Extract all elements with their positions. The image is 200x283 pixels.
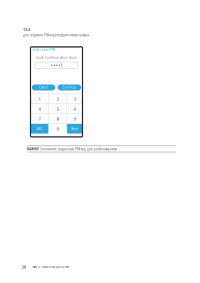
staticText: Enter your PIN <box>33 48 55 52</box>
staticText: 5 <box>57 106 59 112</box>
staticText: Next <box>71 127 78 131</box>
staticText: 7 <box>38 116 40 122</box>
staticText: ABC <box>36 127 42 131</box>
button[interactable]: Cancel <box>32 84 55 90</box>
button[interactable]: ABC <box>30 124 48 133</box>
staticText: 4 <box>38 106 40 112</box>
button[interactable]: 7 <box>30 114 48 123</box>
staticText: 8 <box>57 116 59 122</box>
staticText: 3 <box>74 96 76 102</box>
staticText: 2 <box>57 96 59 102</box>
button[interactable]: 0 <box>49 124 67 133</box>
staticText: Touch Continue when done <box>36 56 77 59</box>
button[interactable]: Continue <box>58 84 81 90</box>
staticText: 1 <box>38 96 40 102</box>
staticText: 13.4 <box>23 27 30 32</box>
button[interactable]: 8 <box>49 114 67 123</box>
button[interactable]: 6 <box>67 104 82 113</box>
staticText: Для создания PIN-кода введите четыре циф… <box>23 33 90 37</box>
button[interactable]: Next <box>67 124 82 133</box>
staticText: 9 <box>74 116 76 122</box>
button[interactable]: 4 <box>30 104 48 113</box>
staticText: 6 <box>74 106 76 112</box>
button[interactable]: 9 <box>67 114 82 123</box>
button[interactable]: 2 <box>49 94 67 103</box>
staticText: 58 <box>22 265 26 270</box>
staticText: Continue <box>62 86 76 89</box>
staticText: Запомните созданный PIN-код для разблоки… <box>39 147 118 151</box>
button[interactable]: 3 <box>67 94 82 103</box>
staticText: Глава 13. Настройка устройства <box>32 265 69 269</box>
staticText: Cancel <box>39 86 48 89</box>
staticText: 0 <box>57 126 59 132</box>
button[interactable]: 1 <box>30 94 48 103</box>
staticText: ВАЖНО! <box>27 147 39 151</box>
button[interactable]: 5 <box>49 104 67 113</box>
